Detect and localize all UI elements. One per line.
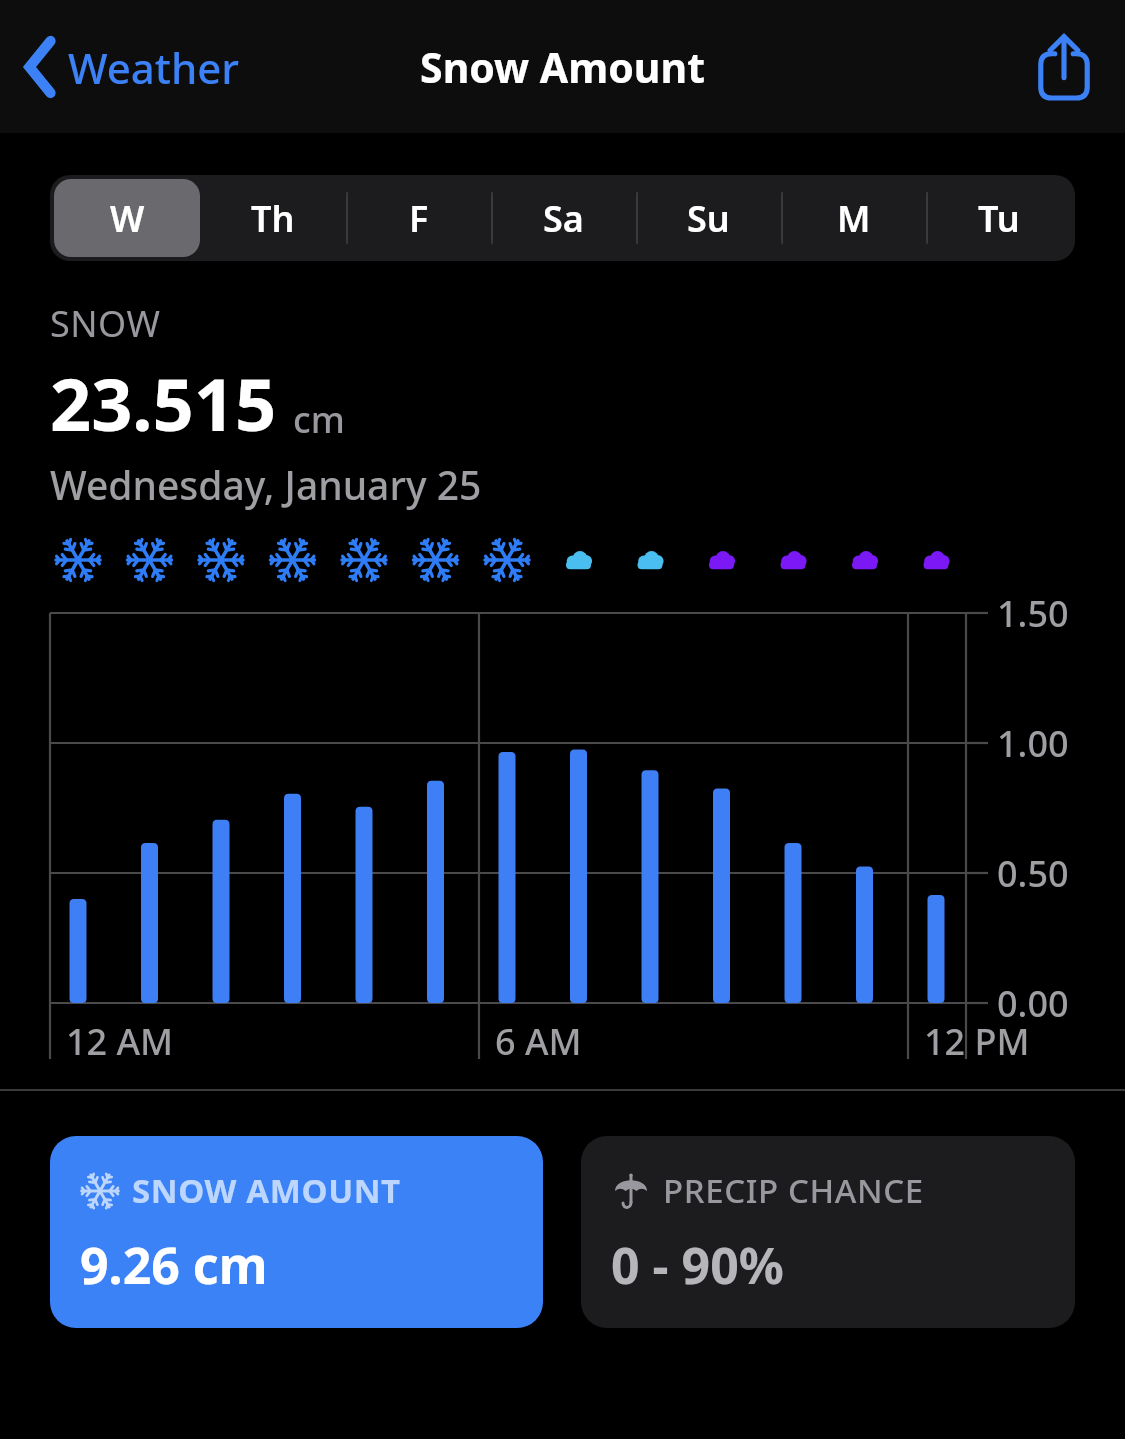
staticText: Sa — [543, 194, 584, 243]
button[interactable]: Share — [1029, 26, 1099, 108]
staticText: 0.50 — [997, 849, 1069, 898]
staticText: 23.515 — [50, 354, 277, 452]
button[interactable]: Th — [200, 179, 346, 257]
staticText: Snow Amount — [420, 39, 705, 95]
button[interactable]: F — [346, 179, 491, 257]
staticText: 0 - 90% — [611, 1231, 784, 1299]
staticText: Weather — [68, 39, 240, 96]
staticText: 12 PM — [924, 1017, 1030, 1066]
button[interactable]: SNOW AMOUNT — [50, 1136, 543, 1328]
staticText: 9.26 cm — [80, 1231, 268, 1299]
staticText: PRECIP CHANCE — [663, 1168, 924, 1213]
staticText: F — [409, 194, 429, 243]
staticText: Tu — [978, 194, 1020, 243]
staticText: cm — [293, 395, 345, 444]
staticText: 12 AM — [66, 1017, 174, 1066]
staticText: Su — [687, 194, 730, 243]
staticText: SNOW — [50, 299, 161, 348]
staticText: 1.50 — [997, 589, 1069, 638]
button[interactable]: Sa — [491, 179, 636, 257]
button[interactable]: Su — [636, 179, 781, 257]
staticText: W — [110, 194, 145, 243]
staticText: 1.00 — [997, 719, 1069, 768]
staticText: 6 AM — [495, 1017, 582, 1066]
staticText: M — [837, 194, 871, 243]
staticText: 0.00 — [997, 979, 1069, 1028]
staticText: Th — [251, 194, 295, 243]
staticText: SNOW AMOUNT — [132, 1168, 401, 1213]
button[interactable]: M — [781, 179, 926, 257]
button[interactable]: Tu — [926, 179, 1071, 257]
button[interactable]: PRECIP CHANCE — [581, 1136, 1075, 1328]
button[interactable]: W — [54, 179, 200, 257]
staticText: Wednesday, January 25 — [50, 458, 482, 511]
button[interactable]: Weather — [18, 28, 246, 106]
